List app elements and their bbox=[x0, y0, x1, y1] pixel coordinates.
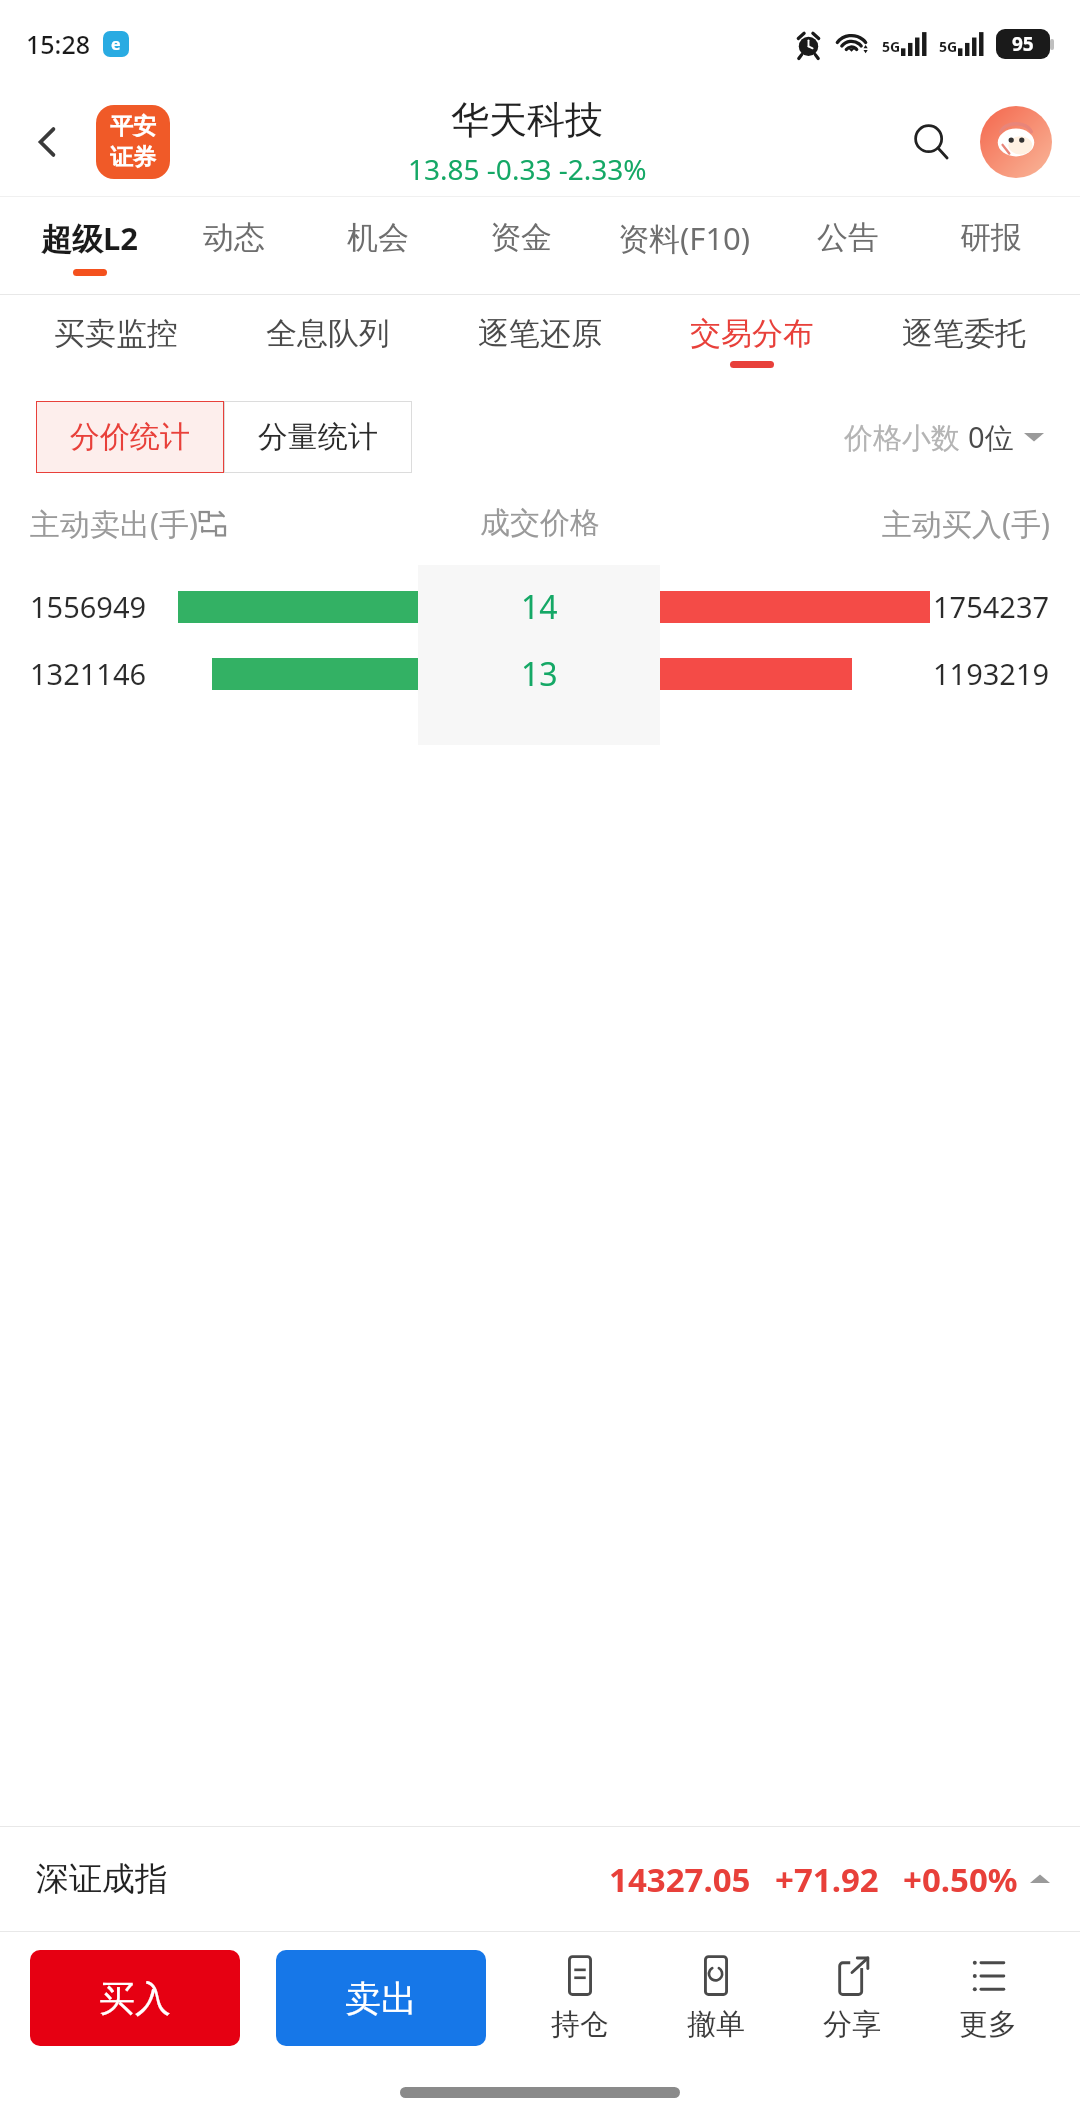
staticText: 价格小数 bbox=[844, 417, 968, 457]
button[interactable]: 资金 bbox=[449, 197, 592, 295]
staticText: 逐笔还原 bbox=[478, 314, 602, 353]
button[interactable]: 公告 bbox=[776, 197, 919, 295]
staticText: 深证成指 bbox=[36, 1858, 168, 1900]
button[interactable]: 撤单 bbox=[648, 1932, 784, 2064]
button[interactable]: 逐笔还原 bbox=[434, 295, 646, 387]
button[interactable]: 1321146 bbox=[0, 640, 1080, 707]
staticText: +0.50% bbox=[903, 1857, 1018, 1902]
staticText: 成交价格 bbox=[420, 504, 660, 542]
staticText: 研报 bbox=[960, 218, 1022, 257]
button[interactable]: Search bbox=[884, 88, 980, 196]
staticText: 逐笔委托 bbox=[902, 314, 1026, 353]
staticText: 15:28 bbox=[26, 27, 91, 61]
staticText: 13 bbox=[521, 652, 558, 696]
button[interactable]: Swap columns bbox=[198, 509, 228, 539]
button[interactable]: 超级L2 bbox=[18, 197, 162, 295]
button[interactable]: 价格小数 bbox=[838, 411, 1050, 463]
staticText: 0位 bbox=[968, 417, 1014, 457]
staticText: 5G bbox=[939, 37, 958, 56]
staticText: 平安 bbox=[110, 112, 156, 141]
staticText: 分量统计 bbox=[258, 418, 378, 456]
staticText: 1754237 bbox=[933, 587, 1050, 626]
staticText: 分价统计 bbox=[70, 418, 190, 456]
staticText: 14 bbox=[521, 585, 558, 629]
button[interactable]: 机会 bbox=[306, 197, 449, 295]
staticText: e bbox=[111, 33, 121, 55]
staticText: 动态 bbox=[203, 218, 265, 257]
button[interactable]: 交易分布 bbox=[646, 295, 858, 387]
staticText: 主动买入(手) bbox=[882, 503, 1050, 544]
button[interactable]: 1556949 bbox=[0, 573, 1080, 640]
button[interactable]: 持仓 bbox=[512, 1932, 648, 2064]
button[interactable]: 更多 bbox=[920, 1932, 1056, 2064]
button[interactable]: Back bbox=[0, 88, 96, 196]
staticText: 95 bbox=[1012, 31, 1034, 57]
staticText: 买卖监控 bbox=[54, 314, 178, 353]
button[interactable]: 全息队列 bbox=[222, 295, 434, 387]
staticText: 持仓 bbox=[551, 2006, 609, 2043]
staticText: 全息队列 bbox=[266, 314, 390, 353]
button[interactable]: 逐笔委托 bbox=[858, 295, 1070, 387]
staticText: 机会 bbox=[347, 218, 409, 257]
staticText: 交易分布 bbox=[690, 314, 814, 353]
button[interactable]: 卖出 bbox=[276, 1950, 486, 2046]
staticText: 超级L2 bbox=[41, 217, 139, 259]
staticText: 卖出 bbox=[345, 1976, 417, 2021]
staticText: 13.85 -0.33 -2.33% bbox=[408, 150, 647, 188]
staticText: 1556949 bbox=[30, 587, 147, 626]
staticText: 1321146 bbox=[30, 654, 147, 693]
staticText: 华天科技 bbox=[451, 96, 603, 144]
staticText: 5G bbox=[882, 37, 901, 56]
staticText: 证券 bbox=[110, 143, 156, 172]
button[interactable]: 动态 bbox=[162, 197, 306, 295]
staticText: 分享 bbox=[823, 2006, 881, 2043]
staticText: 公告 bbox=[817, 218, 879, 257]
button[interactable]: Account bbox=[980, 106, 1052, 178]
button[interactable]: 深证成指 bbox=[0, 1827, 1080, 1931]
button[interactable]: 买入 bbox=[30, 1950, 240, 2046]
staticText: 资金 bbox=[490, 218, 552, 257]
staticText: 主动卖出(手) bbox=[30, 503, 198, 544]
button[interactable]: 分享 bbox=[784, 1932, 920, 2064]
staticText: 14327.05 bbox=[609, 1857, 751, 1902]
staticText: 撤单 bbox=[687, 2006, 745, 2043]
button[interactable]: 分价统计 bbox=[36, 401, 224, 473]
button[interactable]: 资料(F10) bbox=[592, 197, 776, 295]
button[interactable]: 研报 bbox=[919, 197, 1062, 295]
staticText: 更多 bbox=[959, 2006, 1017, 2043]
staticText: 资料(F10) bbox=[618, 217, 751, 259]
button[interactable]: 分量统计 bbox=[224, 401, 412, 473]
staticText: 买入 bbox=[99, 1976, 171, 2021]
staticText: +71.92 bbox=[775, 1857, 879, 1902]
button[interactable]: 买卖监控 bbox=[10, 295, 222, 387]
button[interactable]: Ping An Securities bbox=[96, 105, 170, 179]
staticText: 1193219 bbox=[933, 654, 1050, 693]
